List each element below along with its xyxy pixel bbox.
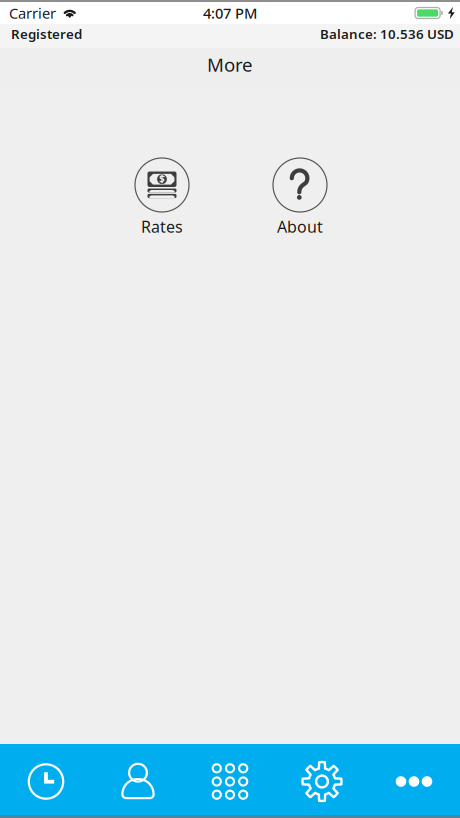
staticText: 4:07 PM — [203, 3, 257, 23]
staticText: Rates — [141, 216, 183, 237]
button[interactable]: Recents — [0, 744, 92, 815]
button[interactable]: More — [368, 744, 460, 815]
staticText: Registered — [11, 25, 82, 43]
button[interactable]: About — [250, 158, 350, 237]
staticText: More — [207, 52, 253, 77]
button[interactable]: Settings — [276, 744, 368, 815]
button[interactable]: Keypad — [184, 744, 276, 815]
button[interactable]: Rates — [112, 158, 212, 237]
staticText: Balance: 10.536 USD — [320, 25, 454, 43]
staticText: About — [277, 216, 323, 237]
staticText: Carrier — [9, 3, 56, 23]
button[interactable]: Contacts — [92, 744, 184, 815]
